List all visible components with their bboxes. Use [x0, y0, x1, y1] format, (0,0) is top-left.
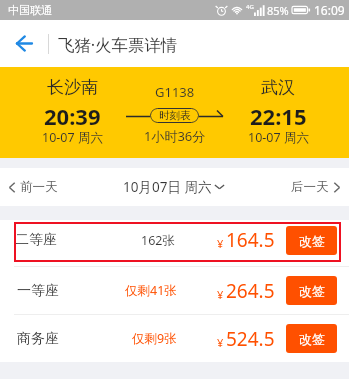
staticText: 前一天 — [20, 179, 58, 195]
staticText: 164.5 — [226, 227, 275, 253]
button[interactable]: 改签 — [286, 226, 337, 255]
staticText: 仅剩9张 — [132, 330, 177, 347]
button[interactable]: 一等座 — [0, 267, 349, 314]
button[interactable]: 改签 — [286, 324, 337, 353]
staticText: 10-07 周六 — [248, 129, 309, 146]
staticText: 后一天 — [291, 179, 329, 195]
staticText: G1138 — [155, 83, 195, 101]
button[interactable]: 时刻表 — [150, 108, 199, 123]
button[interactable]: 改签 — [286, 276, 337, 305]
staticText: 162张 — [141, 232, 175, 249]
staticText: 264.5 — [226, 278, 275, 304]
staticText: 商务座 — [17, 330, 117, 348]
staticText: 10月07日 周六 — [123, 178, 212, 196]
staticText: 4G — [246, 3, 254, 11]
staticText: 飞猪·火车票详情 — [58, 33, 178, 55]
staticText: 仅剩41张 — [125, 282, 177, 299]
button[interactable]: 10月07日 周六 — [123, 178, 225, 196]
staticText: 改签 — [299, 283, 325, 299]
staticText: 10-07 周六 — [42, 129, 103, 146]
button[interactable]: 前一天 — [9, 179, 123, 195]
staticText: 改签 — [299, 331, 325, 347]
staticText: 85% — [267, 3, 289, 18]
staticText: ¥ — [217, 236, 224, 251]
staticText: ¥ — [217, 335, 224, 350]
staticText: 20:39 — [44, 101, 101, 131]
staticText: 22:15 — [250, 101, 307, 131]
button[interactable]: 二等座 — [14, 222, 341, 258]
staticText: ¥ — [217, 287, 224, 302]
staticText: 二等座 — [15, 231, 115, 249]
staticText: 1小时36分 — [144, 127, 206, 145]
staticText: 长沙南 — [47, 77, 98, 98]
staticText: 改签 — [299, 233, 325, 249]
button[interactable]: 后一天 — [225, 179, 340, 195]
button[interactable]: 商务座 — [0, 315, 349, 362]
staticText: 武汉 — [261, 77, 295, 98]
staticText: 16:09 — [314, 2, 345, 18]
button[interactable]: Back — [0, 20, 48, 67]
staticText: 中国联通 — [8, 3, 52, 17]
staticText: 一等座 — [17, 282, 117, 300]
staticText: 524.5 — [226, 326, 275, 352]
staticText: 时刻表 — [159, 109, 191, 122]
